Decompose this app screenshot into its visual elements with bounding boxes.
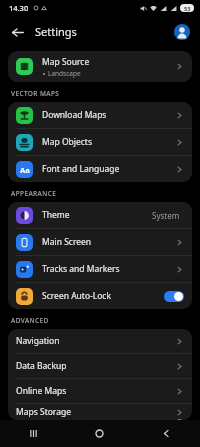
staticText: Data Backup: [16, 360, 67, 372]
staticText: Map Objects: [42, 136, 92, 148]
button[interactable]: Download Maps: [8, 102, 192, 128]
button[interactable]: Recents: [0, 420, 66, 447]
staticText: Online Maps: [16, 385, 67, 397]
button[interactable]: Navigation: [8, 329, 192, 353]
button[interactable]: Back: [133, 420, 200, 447]
staticText: APPEARANCE: [11, 189, 57, 198]
staticText: Font and Language: [42, 163, 120, 175]
staticText: Navigation: [16, 335, 60, 347]
button[interactable]: Account: [171, 21, 193, 43]
staticText: VECTOR MAPS: [11, 89, 60, 98]
button[interactable]: Main Screen: [8, 229, 192, 255]
button[interactable]: Online Maps: [8, 379, 192, 403]
button[interactable]: Map Source: [8, 51, 192, 82]
button[interactable]: Tracks and Markers: [8, 256, 192, 282]
staticText: Screen Auto-Lock: [42, 290, 111, 302]
staticText: Theme: [42, 209, 70, 221]
button[interactable]: Map Objects: [8, 129, 192, 155]
staticText: Settings: [35, 24, 77, 39]
staticText: 53: [184, 5, 191, 12]
staticText: Maps Storage: [16, 406, 71, 418]
button[interactable]: Back: [4, 19, 30, 45]
staticText: Landscape: [48, 69, 81, 78]
staticText: Main Screen: [42, 236, 92, 248]
staticText: System: [152, 210, 180, 221]
staticText: Download Maps: [42, 109, 107, 121]
staticText: Aa: [20, 165, 30, 175]
staticText: ADVANCED: [11, 316, 49, 325]
staticText: Tracks and Markers: [42, 263, 120, 275]
button[interactable]: Aa: [8, 156, 192, 182]
staticText: 14.30: [9, 3, 29, 13]
button[interactable]: Screen Auto-Lock: [8, 283, 192, 309]
button[interactable]: Theme: [8, 202, 192, 228]
staticText: Map Source: [42, 56, 90, 68]
button[interactable]: Home: [66, 420, 133, 447]
button[interactable]: Maps Storage: [8, 404, 192, 420]
button[interactable]: Data Backup: [8, 354, 192, 378]
